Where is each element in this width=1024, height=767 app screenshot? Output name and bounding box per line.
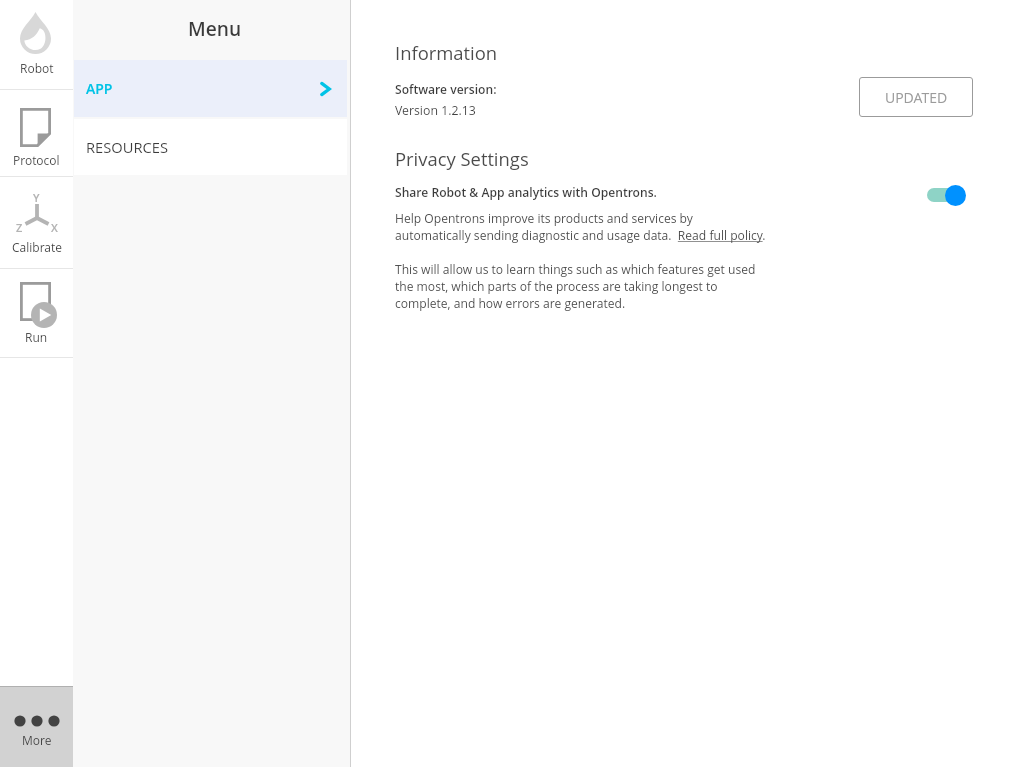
button[interactable]: More (0, 687, 73, 767)
staticText: Y (33, 190, 40, 205)
button[interactable]: RESOURCES (74, 119, 347, 175)
staticText: This will allow us to learn things such … (395, 261, 756, 312)
button[interactable]: Run (0, 269, 73, 357)
staticText: UPDATED (885, 88, 948, 107)
button[interactable]: Protocol (0, 90, 73, 176)
staticText: Calibrate (12, 239, 62, 255)
staticText: Help Opentrons improve its products and … (395, 210, 766, 244)
button[interactable]: Y (0, 177, 73, 268)
staticText: APP (86, 79, 113, 98)
staticText: Privacy Settings (395, 146, 529, 171)
staticText: Version 1.2.13 (395, 102, 476, 119)
button[interactable]: Robot (0, 0, 73, 89)
staticText: RESOURCES (86, 137, 169, 157)
button[interactable]: Share analytics toggle (925, 184, 967, 206)
staticText: Information (395, 40, 498, 65)
staticText: X (51, 220, 58, 235)
staticText: Robot (20, 60, 54, 76)
button[interactable]: UPDATED (859, 77, 973, 117)
staticText: Share Robot & App analytics with Opentro… (395, 184, 657, 200)
staticText: Menu (188, 15, 242, 41)
staticText: Run (25, 329, 48, 345)
staticText: Protocol (13, 152, 60, 168)
staticText: More (22, 732, 52, 748)
staticText: Z (16, 220, 23, 235)
button[interactable]: APP (74, 60, 347, 117)
staticText: Software version: (395, 81, 497, 97)
